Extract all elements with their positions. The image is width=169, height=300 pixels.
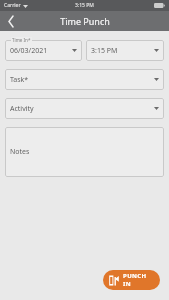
staticText: Activity: [10, 104, 34, 114]
staticText: Time In*: [12, 37, 31, 43]
staticText: PUNCH IN: [123, 272, 153, 288]
staticText: 06/03/2021: [10, 46, 48, 56]
button[interactable]: 3:15 PM: [86, 40, 164, 61]
staticText: Notes: [10, 147, 30, 157]
button[interactable]: 06/03/2021: [5, 40, 82, 61]
staticText: Task*: [10, 75, 29, 85]
button[interactable]: Notes: [5, 127, 164, 177]
button[interactable]: Back: [0, 11, 22, 31]
staticText: 3:15 PM: [91, 46, 118, 56]
button[interactable]: Activity: [5, 98, 164, 119]
button[interactable]: PUNCH IN: [103, 270, 160, 290]
staticText: 3:15 PM: [75, 2, 94, 9]
staticText: Carrier: [4, 2, 21, 9]
staticText: Time Punch: [60, 15, 110, 27]
button[interactable]: Task*: [5, 69, 164, 90]
